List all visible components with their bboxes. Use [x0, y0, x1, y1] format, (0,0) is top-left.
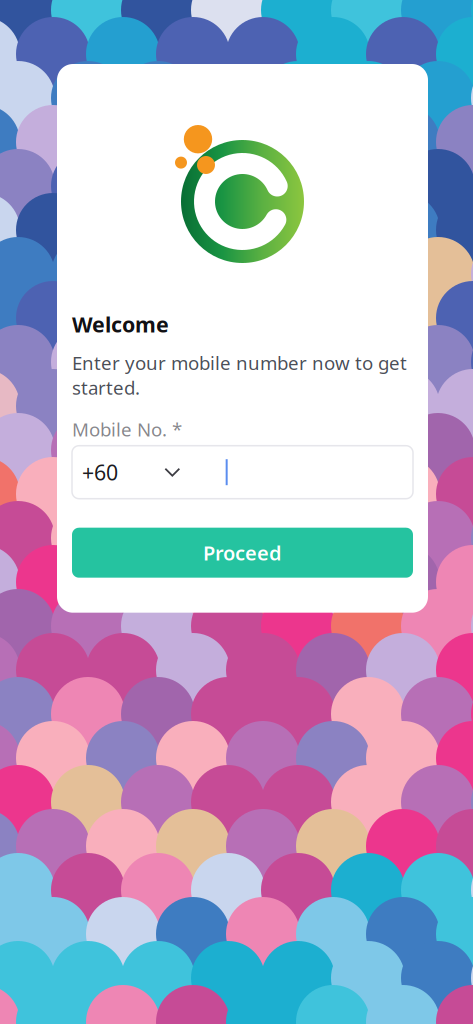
- button[interactable]: Proceed: [72, 528, 413, 578]
- staticText: Proceed: [203, 539, 282, 566]
- staticText: Welcome: [72, 310, 169, 338]
- staticText: +60: [82, 458, 118, 486]
- staticText: Enter your mobile number now to get star…: [72, 350, 407, 400]
- staticText: Mobile No. *: [72, 417, 182, 442]
